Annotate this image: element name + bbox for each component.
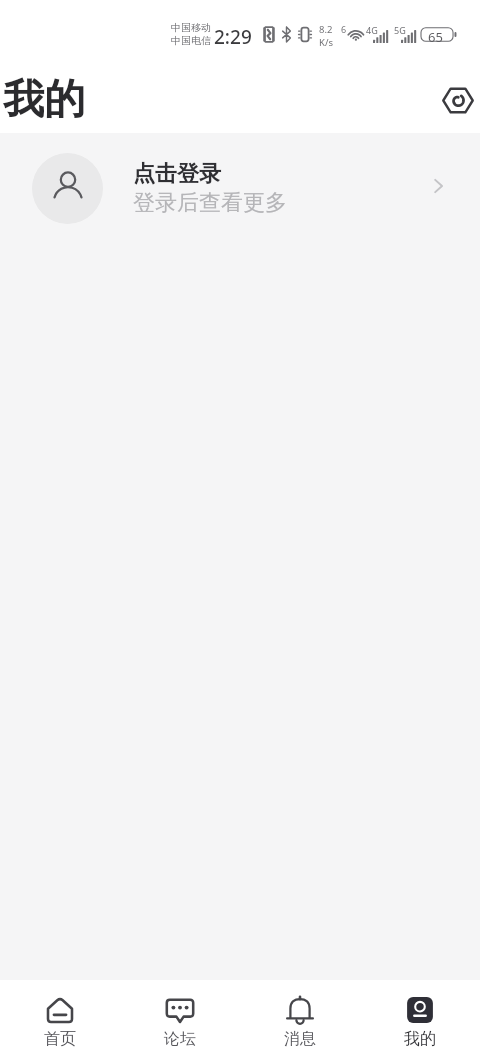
staticText: 首页 (44, 1029, 76, 1049)
staticText: K/s (319, 36, 333, 49)
button[interactable]: 首页 (0, 980, 120, 1057)
staticText: 4G (366, 24, 378, 36)
button[interactable]: 点击登录 (0, 133, 480, 243)
staticText: 5G (394, 24, 406, 36)
staticText: 登录后查看更多 (133, 189, 287, 217)
staticText: 65 (428, 28, 443, 46)
staticText: 6 (341, 23, 347, 35)
staticText: 2:29 (214, 24, 252, 50)
staticText: 8.2 (319, 23, 333, 36)
button[interactable]: 消息 (240, 980, 360, 1057)
staticText: 中国电信 (171, 34, 211, 47)
button[interactable]: 我的 (360, 980, 480, 1057)
staticText: 我的 (3, 74, 85, 126)
staticText: 中国移动 (171, 21, 211, 34)
staticText: 我的 (404, 1029, 436, 1049)
staticText: 论坛 (164, 1029, 196, 1049)
staticText: 点击登录 (133, 160, 221, 188)
staticText: 消息 (284, 1029, 316, 1049)
button[interactable]: Settings (437, 79, 479, 121)
button[interactable]: 论坛 (120, 980, 240, 1057)
